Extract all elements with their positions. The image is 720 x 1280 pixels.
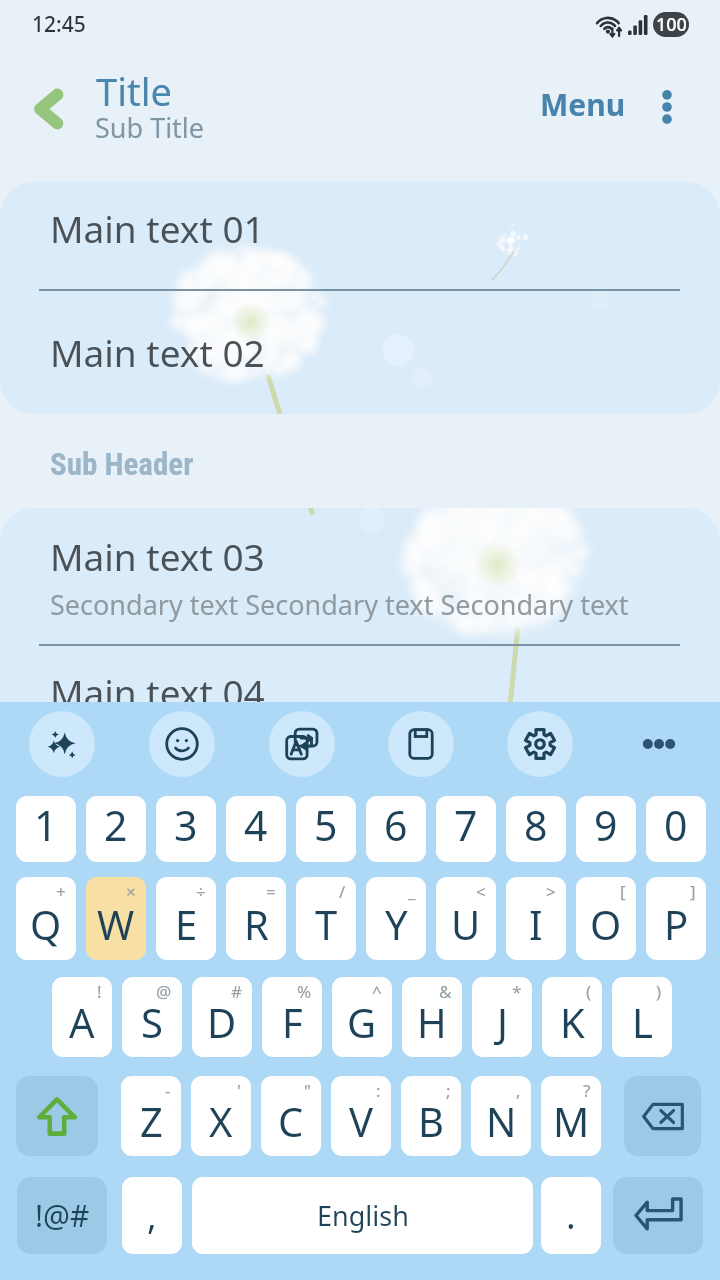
button[interactable]: !@# xyxy=(17,1177,107,1254)
staticText: ? xyxy=(583,1079,591,1102)
staticText: English xyxy=(317,1197,409,1234)
staticText: B xyxy=(418,1094,444,1148)
button[interactable]: F xyxy=(262,977,322,1057)
button[interactable]: Menu xyxy=(527,74,639,134)
staticText: Main text 02 xyxy=(50,327,265,377)
button[interactable]: 8 xyxy=(506,796,566,862)
button[interactable]: Main text 01 xyxy=(0,182,720,290)
staticText: L xyxy=(632,995,653,1049)
button[interactable]: V xyxy=(331,1076,391,1156)
button[interactable]: Emoji xyxy=(149,711,215,777)
button[interactable]: Back xyxy=(16,77,80,141)
staticText: 5 xyxy=(314,797,338,853)
staticText: " xyxy=(304,1079,311,1102)
button[interactable]: E xyxy=(156,877,216,960)
staticText: 9 xyxy=(594,797,618,853)
staticText: V xyxy=(349,1094,373,1148)
staticText: & xyxy=(439,980,452,1003)
button[interactable]: D xyxy=(192,977,252,1057)
button[interactable]: A xyxy=(52,977,112,1057)
button[interactable]: More options xyxy=(638,78,696,136)
button[interactable]: . xyxy=(541,1177,601,1254)
button[interactable]: 3 xyxy=(156,796,216,862)
staticText: U xyxy=(451,897,481,951)
staticText: J xyxy=(497,995,508,1049)
button[interactable]: I xyxy=(506,877,566,960)
button[interactable]: M xyxy=(541,1076,601,1156)
button[interactable]: 4 xyxy=(226,796,286,862)
staticText: # xyxy=(231,980,242,1003)
button[interactable]: 0 xyxy=(646,796,706,862)
button[interactable]: J xyxy=(472,977,532,1057)
button[interactable]: Writing tools xyxy=(29,711,95,777)
staticText: , xyxy=(147,1191,157,1240)
staticText: ) xyxy=(656,980,662,1003)
button[interactable]: L xyxy=(612,977,672,1057)
button[interactable]: Main text 03 xyxy=(0,508,720,645)
staticText: N xyxy=(486,1094,517,1148)
button[interactable]: S xyxy=(122,977,182,1057)
staticText: Sub Header xyxy=(50,446,194,482)
button[interactable]: 7 xyxy=(436,796,496,862)
staticText: × xyxy=(126,880,136,903)
button[interactable]: Settings xyxy=(507,711,573,777)
button[interactable]: T xyxy=(296,877,356,960)
button[interactable]: X xyxy=(191,1076,251,1156)
staticText: !@# xyxy=(35,1195,90,1236)
button[interactable]: 1 xyxy=(16,796,76,862)
staticText: Title xyxy=(96,65,172,117)
staticText: 8 xyxy=(524,797,548,853)
button[interactable]: Y xyxy=(366,877,426,960)
button[interactable]: B xyxy=(401,1076,461,1156)
staticText: E xyxy=(175,897,198,951)
staticText: + xyxy=(56,880,66,903)
button[interactable]: 6 xyxy=(366,796,426,862)
staticText: = xyxy=(266,880,276,903)
staticText: ( xyxy=(586,980,592,1003)
button[interactable]: , xyxy=(122,1177,182,1254)
button[interactable]: 9 xyxy=(576,796,636,862)
button[interactable]: Enter xyxy=(613,1177,703,1254)
staticText: . xyxy=(566,1191,576,1240)
button[interactable]: Z xyxy=(121,1076,181,1156)
button[interactable]: Backspace xyxy=(624,1076,701,1156)
button[interactable]: C xyxy=(261,1076,321,1156)
button[interactable]: G xyxy=(332,977,392,1057)
button[interactable]: U xyxy=(436,877,496,960)
button[interactable]: English xyxy=(192,1177,533,1254)
button[interactable]: N xyxy=(471,1076,531,1156)
staticText: Main text 03 xyxy=(50,531,265,581)
staticText: Menu xyxy=(540,84,626,125)
button[interactable]: Clipboard xyxy=(388,711,454,777)
staticText: Z xyxy=(140,1094,163,1148)
button[interactable]: Translate xyxy=(269,711,335,777)
button[interactable]: H xyxy=(402,977,462,1057)
button[interactable]: 2 xyxy=(86,796,146,862)
button[interactable]: K xyxy=(542,977,602,1057)
staticText: ^ xyxy=(372,980,382,1003)
staticText: % xyxy=(297,980,312,1003)
button[interactable]: More options xyxy=(626,711,692,777)
staticText: H xyxy=(417,995,447,1049)
button[interactable]: Shift xyxy=(16,1076,98,1156)
staticText: S xyxy=(141,995,163,1049)
button[interactable]: R xyxy=(226,877,286,960)
button[interactable]: W xyxy=(86,877,146,960)
staticText: M xyxy=(553,1094,590,1148)
staticText: R xyxy=(244,897,269,951)
button[interactable]: Main text 02 xyxy=(0,290,720,414)
staticText: 1 xyxy=(34,797,58,853)
button[interactable]: O xyxy=(576,877,636,960)
staticText: 2 xyxy=(104,797,128,853)
staticText: Main text 01 xyxy=(50,203,265,253)
staticText: < xyxy=(476,880,486,903)
staticText: 12:45 xyxy=(32,10,86,39)
staticText: ] xyxy=(690,880,696,903)
button[interactable]: P xyxy=(646,877,706,960)
staticText: ' xyxy=(237,1079,241,1102)
button[interactable]: 5 xyxy=(296,796,356,862)
staticText: , xyxy=(516,1079,521,1102)
other: Shift xyxy=(38,1097,76,1136)
button[interactable]: Q xyxy=(16,877,76,960)
staticText: W xyxy=(97,897,135,951)
